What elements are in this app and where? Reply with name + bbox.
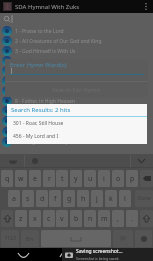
button[interactable]: Symbols <box>140 210 153 227</box>
staticText: o <box>116 174 121 184</box>
staticText: 6 - O Worship the King <box>15 78 68 85</box>
staticText: a <box>12 194 16 204</box>
staticText: c <box>47 214 51 224</box>
button[interactable]: o <box>112 170 124 187</box>
staticText: 2 - All Creatures of Our God and King <box>15 38 102 45</box>
button[interactable]: e <box>29 170 41 187</box>
button[interactable]: Search <box>0 13 153 25</box>
button[interactable]: More options <box>139 0 153 13</box>
button[interactable]: c <box>43 210 55 227</box>
button[interactable]: r <box>43 170 55 187</box>
button[interactable]: h <box>77 190 89 207</box>
button[interactable]: 7 - Lord, in the Morning <box>0 86 153 96</box>
staticText: Search Results: 2 hits <box>11 106 71 114</box>
button[interactable]: b <box>70 210 82 227</box>
staticText: , <box>117 214 119 224</box>
staticText: 9 - My Maker and my King <box>15 108 76 115</box>
button[interactable]: 4 - All Hail the Power of Jesus' Name <box>0 56 153 66</box>
button[interactable]: 5 - Come, Thou Almighty King <box>0 66 153 76</box>
staticText: 5 - Come, Thou Almighty King <box>15 68 85 75</box>
button[interactable]: Expand suggestions <box>132 155 150 167</box>
staticText: p <box>130 174 135 184</box>
staticText: g <box>67 194 72 204</box>
button[interactable]: v <box>56 210 68 227</box>
staticText: 10 - The God of Abraham Praise <box>15 118 90 125</box>
staticText: SDA Hymnal With Zuks <box>15 3 80 11</box>
button[interactable]: 8 - Father, in High Heaven <box>0 96 153 106</box>
staticText: j <box>96 194 98 204</box>
staticText: 8 - Father, in High Heaven <box>15 98 76 105</box>
button[interactable]: g <box>63 190 75 207</box>
button[interactable]: Home <box>48 248 82 261</box>
staticText: u <box>88 174 93 184</box>
staticText: k <box>109 194 113 204</box>
button[interactable]: a <box>8 190 20 207</box>
staticText: e <box>33 174 37 184</box>
staticText: Enter Hymn Word(s) <box>10 61 67 69</box>
staticText: ?123 <box>5 235 16 242</box>
staticText: n <box>88 214 93 224</box>
button[interactable]: x <box>29 210 41 227</box>
button[interactable]: 11 - Before Jehovah's Awful Throne <box>0 127 153 137</box>
staticText: 11 - Before Jehovah's Awful Throne <box>15 129 97 136</box>
button[interactable]: Voice input <box>135 230 152 247</box>
staticText: r <box>48 174 51 184</box>
button[interactable]: 2 - All Creatures of Our God and King <box>0 36 153 46</box>
button[interactable]: j <box>91 190 103 207</box>
button[interactable]: q <box>1 170 13 187</box>
button[interactable]: 6 - O Worship the King <box>0 76 153 86</box>
button[interactable]: Back <box>6 248 40 261</box>
staticText: 1 - Praise to the Lord <box>15 28 64 35</box>
button[interactable]: n <box>84 210 96 227</box>
button[interactable]: i <box>98 170 110 187</box>
button[interactable]: 1 - Praise to the Lord <box>0 26 153 36</box>
staticText: Search For Hymn <box>52 86 101 94</box>
button[interactable]: Emoji <box>4 155 22 167</box>
staticText: 301 - Roar, Still House <box>13 120 64 127</box>
button[interactable]: y <box>70 170 82 187</box>
staticText: . <box>131 214 133 224</box>
staticText: t <box>61 174 64 184</box>
button[interactable]: Keyboard settings <box>26 155 44 167</box>
button[interactable]: SDA Hymnal With Zuks <box>0 0 153 13</box>
button[interactable]: Backspace <box>140 170 153 187</box>
button[interactable]: 9 - My Maker and my King <box>0 106 153 116</box>
button[interactable]: k <box>105 190 117 207</box>
button[interactable]: l <box>119 190 131 207</box>
staticText: f <box>54 194 57 204</box>
button[interactable]: 3 - God Himself is With Us <box>0 46 153 56</box>
staticText: 456 - My Lord and I <box>13 133 59 140</box>
staticText: b <box>74 214 79 224</box>
staticText: 4 - All Hail the Power of Jesus' Name <box>15 58 100 65</box>
staticText: s <box>26 194 30 204</box>
button[interactable]: m <box>98 210 110 227</box>
button[interactable]: w <box>15 170 27 187</box>
button[interactable]: 456 - My Lord and I <box>7 130 147 143</box>
button[interactable]: t <box>56 170 68 187</box>
button[interactable]: 12 - Sing to the Great Jehovah <box>0 137 153 147</box>
staticText: En <box>26 235 34 243</box>
staticText: .@/ <box>119 235 127 242</box>
staticText: w <box>18 174 24 184</box>
button[interactable]: d <box>36 190 48 207</box>
button[interactable]: u <box>84 170 96 187</box>
button[interactable]: Shift <box>1 210 13 227</box>
staticText: 3 - God Himself is With Us <box>15 48 76 55</box>
button[interactable]: 301 - Roar, Still House <box>7 117 147 130</box>
button[interactable]: z <box>15 210 27 227</box>
button[interactable]: f <box>49 190 61 207</box>
button[interactable]: Recent apps <box>90 248 124 261</box>
staticText: d <box>40 194 45 204</box>
button[interactable]: s <box>22 190 34 207</box>
button[interactable]: 10 - The God of Abraham Praise <box>0 116 153 126</box>
button[interactable]: p <box>126 170 138 187</box>
